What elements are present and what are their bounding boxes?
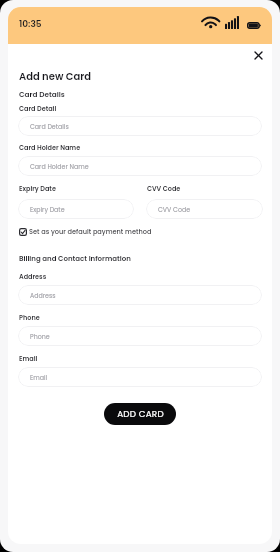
button[interactable]: Phone bbox=[18, 326, 262, 346]
staticText: ADD CARD bbox=[117, 408, 164, 420]
button[interactable]: Set as your default payment method bbox=[19, 227, 152, 236]
staticText: Email bbox=[30, 373, 48, 382]
staticText: Email bbox=[19, 354, 38, 363]
button[interactable]: Expiry Date bbox=[18, 199, 134, 219]
staticText: Address bbox=[19, 272, 47, 281]
staticText: Phone bbox=[30, 332, 50, 341]
staticText: 10:35 bbox=[19, 18, 42, 31]
staticText: Set as your default payment method bbox=[29, 227, 152, 236]
staticText: Add new Card bbox=[19, 69, 91, 83]
staticText: Card Detail bbox=[19, 104, 57, 113]
staticText: Expiry Date bbox=[19, 184, 56, 193]
button[interactable]: Card Details bbox=[18, 116, 262, 136]
staticText: Address bbox=[30, 291, 56, 300]
button[interactable]: CVV Code bbox=[146, 199, 263, 219]
staticText: Billing and Contact Information bbox=[19, 254, 131, 264]
staticText: Expiry Date bbox=[30, 205, 65, 214]
staticText: CVV Code bbox=[158, 205, 191, 214]
button[interactable]: Close bbox=[248, 45, 268, 65]
button[interactable]: Address bbox=[18, 285, 262, 305]
staticText: Card Details bbox=[19, 89, 65, 99]
button[interactable]: Email bbox=[18, 367, 262, 387]
staticText: Card Holder Name bbox=[30, 162, 89, 171]
button[interactable]: ADD CARD bbox=[104, 403, 176, 425]
staticText: CVV Code bbox=[147, 184, 181, 193]
staticText: Card Details bbox=[30, 122, 69, 131]
button[interactable]: Card Holder Name bbox=[18, 156, 262, 176]
staticText: Card Holder Name bbox=[19, 143, 81, 152]
staticText: Phone bbox=[19, 313, 40, 322]
